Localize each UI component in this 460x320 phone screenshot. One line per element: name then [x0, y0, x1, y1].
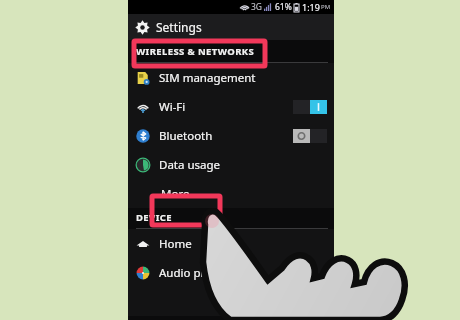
button[interactable]: Settings — [128, 14, 334, 40]
button[interactable]: Home — [128, 229, 334, 258]
staticText: WIRELESS & NETWORKS — [136, 45, 255, 58]
button[interactable]: Wi-Fi — [128, 92, 334, 121]
button[interactable]: SIM management — [128, 63, 334, 92]
staticText: SIM management — [159, 70, 256, 86]
staticText: Settings — [156, 19, 202, 35]
staticText: Audio profiles — [159, 265, 234, 281]
staticText: 3G — [251, 1, 263, 13]
staticText: Data usage — [159, 157, 221, 173]
staticText: Wi-Fi — [159, 99, 186, 115]
button[interactable] — [128, 287, 334, 316]
button[interactable]: On — [293, 100, 327, 114]
button[interactable]: Off — [293, 129, 327, 143]
button[interactable]: More. — [128, 179, 334, 208]
button[interactable]: Audio profiles — [128, 258, 334, 287]
staticText: Home — [159, 236, 192, 252]
staticText: Bluetooth — [159, 128, 213, 144]
staticText: DEVICE — [136, 211, 172, 224]
staticText: PM — [321, 3, 331, 11]
button[interactable]: Data usage — [128, 150, 334, 179]
button[interactable]: Bluetooth — [128, 121, 334, 150]
staticText: More. — [161, 186, 193, 202]
staticText: 1:19 — [302, 1, 320, 13]
staticText: 61% — [275, 1, 292, 13]
